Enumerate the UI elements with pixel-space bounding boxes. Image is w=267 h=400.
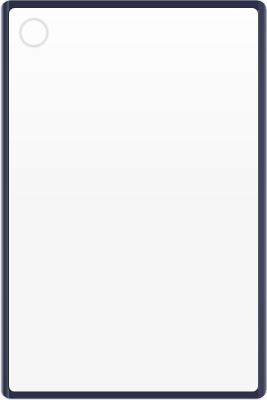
button[interactable]: Tablet case product photo <box>0 0 267 400</box>
